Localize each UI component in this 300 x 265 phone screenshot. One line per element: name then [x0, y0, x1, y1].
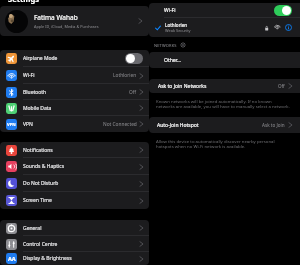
staticText: Lothlorien [165, 22, 188, 28]
staticText: VPN [23, 121, 33, 128]
button[interactable]: Wi-Fi [274, 5, 292, 16]
staticText: AA [8, 255, 16, 263]
button[interactable]: Other... [149, 52, 300, 68]
staticText: Airplane Mode [23, 55, 58, 62]
button[interactable]: Auto-Join Hotspot [149, 117, 300, 133]
staticText: Bluetooth [23, 89, 47, 96]
staticText: Do Not Disturb [23, 180, 59, 187]
button[interactable]: Lothlorien [149, 18, 300, 37]
button[interactable]: Sounds & Haptics [0, 158, 149, 175]
staticText: Other... [164, 57, 181, 64]
staticText: VPN [7, 122, 16, 128]
staticText: Screen Time [23, 197, 52, 204]
staticText: Not Connected [103, 121, 137, 128]
button[interactable]: Wi-Fi [0, 67, 149, 84]
staticText: Mobile Data [23, 105, 52, 112]
staticText: Sounds & Haptics [23, 163, 65, 170]
button[interactable]: Control Centre [0, 236, 149, 252]
staticText: Fatima Wahab [34, 13, 78, 22]
staticText: Off [129, 89, 137, 96]
button[interactable]: Notifications [0, 142, 149, 158]
staticText: Allow this device to automatically disco… [156, 138, 275, 150]
button[interactable]: Wi-Fi [149, 3, 300, 17]
button[interactable]: Ask to Join Networks [149, 79, 300, 93]
button[interactable]: Bluetooth [0, 84, 149, 100]
button[interactable]: Screen Time [0, 192, 149, 209]
button[interactable]: AA [0, 252, 149, 265]
staticText: Weak Security [165, 28, 191, 33]
staticText: Control Centre [23, 241, 58, 248]
staticText: Ask to Join Networks [158, 83, 207, 90]
staticText: Wi-Fi [164, 7, 176, 14]
button[interactable]: Fatima Wahab [0, 6, 149, 36]
staticText: NETWORKS [154, 43, 177, 48]
button[interactable]: General [0, 220, 149, 236]
staticText: General [23, 225, 42, 232]
staticText: Auto-Join Hotspot [157, 122, 199, 129]
staticText: Wi-Fi [23, 72, 35, 79]
button[interactable]: VPN [0, 116, 149, 132]
staticText: Lothlorien [113, 72, 137, 79]
staticText: Settings [8, 0, 40, 4]
staticText: Ask to Join [262, 122, 285, 128]
staticText: Off [278, 83, 285, 89]
staticText: Known networks will be joined automatica… [156, 98, 290, 110]
button[interactable]: Do Not Disturb [0, 175, 149, 192]
staticText: Notifications [23, 147, 53, 154]
button[interactable]: Airplane Mode [0, 50, 149, 67]
button[interactable]: Airplane Mode [125, 53, 143, 64]
button[interactable]: Network info [285, 24, 292, 31]
staticText: Display & Brightness [23, 255, 72, 262]
button[interactable]: Mobile Data [0, 100, 149, 116]
staticText: Apple ID, iCloud, Media & Purchases [34, 24, 99, 29]
